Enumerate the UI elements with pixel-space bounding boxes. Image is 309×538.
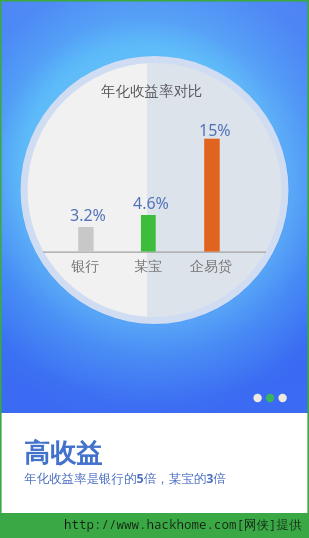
staticText: 某宝 (134, 258, 162, 276)
staticText: 4.6% (133, 192, 169, 214)
staticText: 银行 (71, 258, 99, 276)
staticText: 3.2% (70, 204, 106, 226)
button[interactable]: Page indicator (250, 392, 290, 404)
staticText: http://www.hackhome.com[网侠]提供 (64, 516, 302, 533)
staticText: 企易贷 (190, 258, 232, 276)
staticText: 高收益 (24, 437, 102, 470)
button[interactable]: 高收益 (0, 413, 309, 513)
staticText: 年化收益率是银行的5倍，某宝的3倍 (24, 470, 226, 487)
staticText: 年化收益率对比 (101, 82, 203, 100)
staticText: 15% (199, 119, 231, 141)
